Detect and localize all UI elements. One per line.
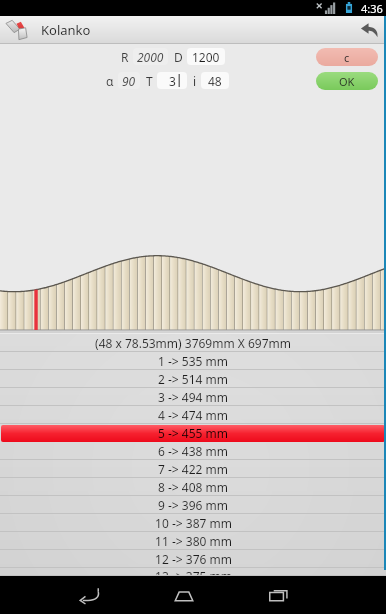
- staticText: 5 -> 455 mm: [158, 425, 228, 441]
- button[interactable]: 4 -> 474 mm: [0, 406, 386, 424]
- button[interactable]: 9 -> 396 mm: [0, 496, 386, 514]
- staticText: i: [193, 73, 197, 89]
- staticText: D: [174, 49, 183, 65]
- staticText: R: [121, 49, 129, 65]
- button[interactable]: (48 x 78.53mm) 3769mm X 697mm: [0, 334, 386, 352]
- staticText: 8 -> 408 mm: [158, 479, 228, 495]
- staticText: 1200: [192, 49, 220, 65]
- staticText: 3 -> 494 mm: [158, 389, 228, 405]
- button[interactable]: 2 -> 514 mm: [0, 370, 386, 388]
- button[interactable]: 6 -> 438 mm: [0, 442, 386, 460]
- staticText: 3: [169, 73, 176, 89]
- staticText: 1 -> 535 mm: [158, 353, 228, 369]
- staticText: (48 x 78.53mm) 3769mm X 697mm: [95, 335, 291, 351]
- staticText: 11 -> 380 mm: [155, 533, 232, 549]
- button[interactable]: 48: [201, 72, 229, 89]
- staticText: 12 -> 376 mm: [155, 551, 232, 567]
- button[interactable]: Back: [66, 576, 112, 614]
- button[interactable]: OK: [316, 72, 378, 90]
- button[interactable]: Home: [161, 576, 207, 614]
- staticText: 4 -> 474 mm: [158, 407, 228, 423]
- button[interactable]: 2000: [137, 48, 164, 65]
- staticText: 90: [122, 73, 136, 89]
- button[interactable]: 10 -> 387 mm: [0, 514, 386, 532]
- staticText: 6 -> 438 mm: [158, 443, 228, 459]
- button[interactable]: 12 -> 376 mm: [0, 550, 386, 568]
- button[interactable]: 7 -> 422 mm: [0, 460, 386, 478]
- button[interactable]: 3: [157, 72, 187, 89]
- staticText: 7 -> 422 mm: [158, 461, 228, 477]
- button[interactable]: Recents: [256, 576, 302, 614]
- button[interactable]: 3 -> 494 mm: [0, 388, 386, 406]
- staticText: α: [106, 73, 114, 89]
- button[interactable]: 13 -> 375 mm: [0, 568, 386, 576]
- button[interactable]: 5 -> 455 mm: [0, 424, 386, 442]
- button[interactable]: Back: [352, 16, 386, 44]
- staticText: 4:36: [361, 1, 383, 16]
- staticText: OK: [339, 74, 355, 89]
- button[interactable]: 90: [122, 72, 136, 89]
- staticText: 10 -> 387 mm: [155, 515, 232, 531]
- staticText: 2 -> 514 mm: [158, 371, 228, 387]
- button[interactable]: 1200: [187, 48, 225, 65]
- button[interactable]: 11 -> 380 mm: [0, 532, 386, 550]
- button[interactable]: 8 -> 408 mm: [0, 478, 386, 496]
- staticText: 13 -> 375 mm: [155, 568, 232, 576]
- staticText: 48: [208, 73, 222, 89]
- staticText: c: [344, 50, 350, 65]
- staticText: Kolanko: [41, 21, 91, 39]
- button[interactable]: c: [316, 48, 378, 66]
- button[interactable]: 1 -> 535 mm: [0, 352, 386, 370]
- staticText: 9 -> 396 mm: [158, 497, 228, 513]
- staticText: T: [146, 73, 153, 89]
- staticText: 2000: [137, 49, 164, 65]
